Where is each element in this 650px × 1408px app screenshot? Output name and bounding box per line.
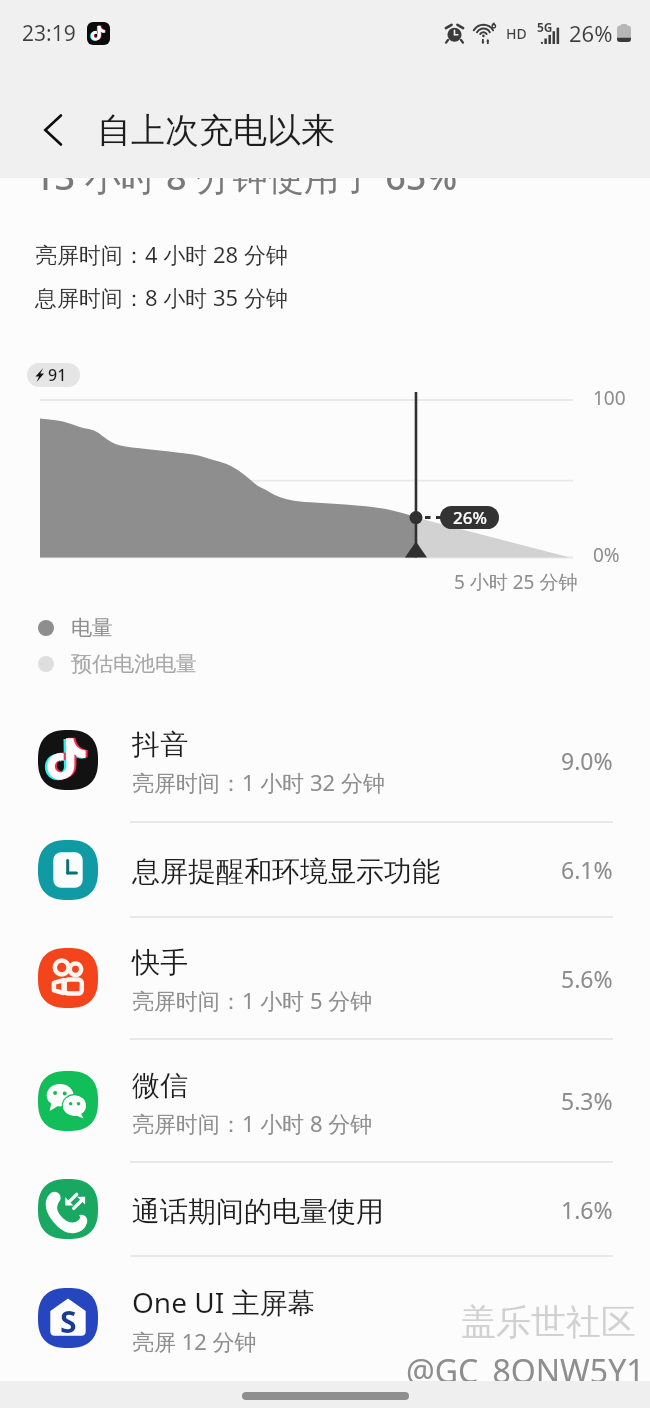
staticText: 1.6% — [561, 1194, 613, 1225]
staticText: 6.1% — [561, 854, 613, 885]
staticText: 26% — [453, 506, 487, 529]
staticText: 电量 — [71, 615, 113, 641]
staticText: 5.6% — [561, 963, 613, 994]
staticText: 100 — [593, 385, 626, 411]
staticText: 5G — [537, 19, 553, 35]
staticText: 息屏提醒和环境显示功能 — [132, 854, 440, 889]
staticText: 盖乐世社区 — [461, 1300, 636, 1344]
staticText: 26% — [569, 18, 613, 48]
staticText: 亮屏时间：4 小时 28 分钟 — [35, 239, 288, 269]
button[interactable]: Back — [17, 86, 89, 158]
staticText: 5 小时 25 分钟 — [454, 569, 578, 595]
button[interactable]: 息屏提醒和环境显示功能 — [0, 823, 650, 916]
staticText: @GC_8QNW5Y1 — [406, 1349, 645, 1393]
staticText: 9.0% — [561, 745, 613, 776]
button[interactable]: S — [0, 1257, 650, 1378]
staticText: 亮屏时间：1 小时 5 分钟 — [132, 985, 373, 1015]
staticText: One UI 主屏幕 — [132, 1283, 316, 1321]
staticText: 91 — [48, 364, 67, 386]
staticText: 13 小时 8 分钟使用了 65% — [34, 178, 458, 201]
staticText: 自上次充电以来 — [97, 109, 335, 152]
staticText: 亮屏时间：1 小时 8 分钟 — [132, 1108, 373, 1138]
staticText: 亮屏 12 分钟 — [132, 1326, 257, 1356]
staticText: S — [60, 1301, 77, 1342]
button[interactable]: 通话期间的电量使用 — [0, 1163, 650, 1255]
staticText: 息屏时间：8 小时 35 分钟 — [35, 282, 288, 312]
staticText: 0% — [593, 542, 620, 568]
button[interactable]: 抖音 — [0, 699, 650, 821]
staticText: 快手 — [132, 945, 188, 980]
staticText: 微信 — [132, 1068, 188, 1103]
staticText: 23:19 — [22, 19, 76, 48]
staticText: 5.3% — [561, 1085, 613, 1116]
staticText: HD — [506, 24, 527, 43]
staticText: 抖音 — [132, 727, 188, 762]
staticText: 通话期间的电量使用 — [132, 1194, 384, 1229]
staticText: 预估电池电量 — [71, 651, 197, 677]
button[interactable]: 微信 — [0, 1040, 650, 1161]
button[interactable]: 快手 — [0, 918, 650, 1038]
staticText: 亮屏时间：1 小时 32 分钟 — [132, 767, 385, 797]
